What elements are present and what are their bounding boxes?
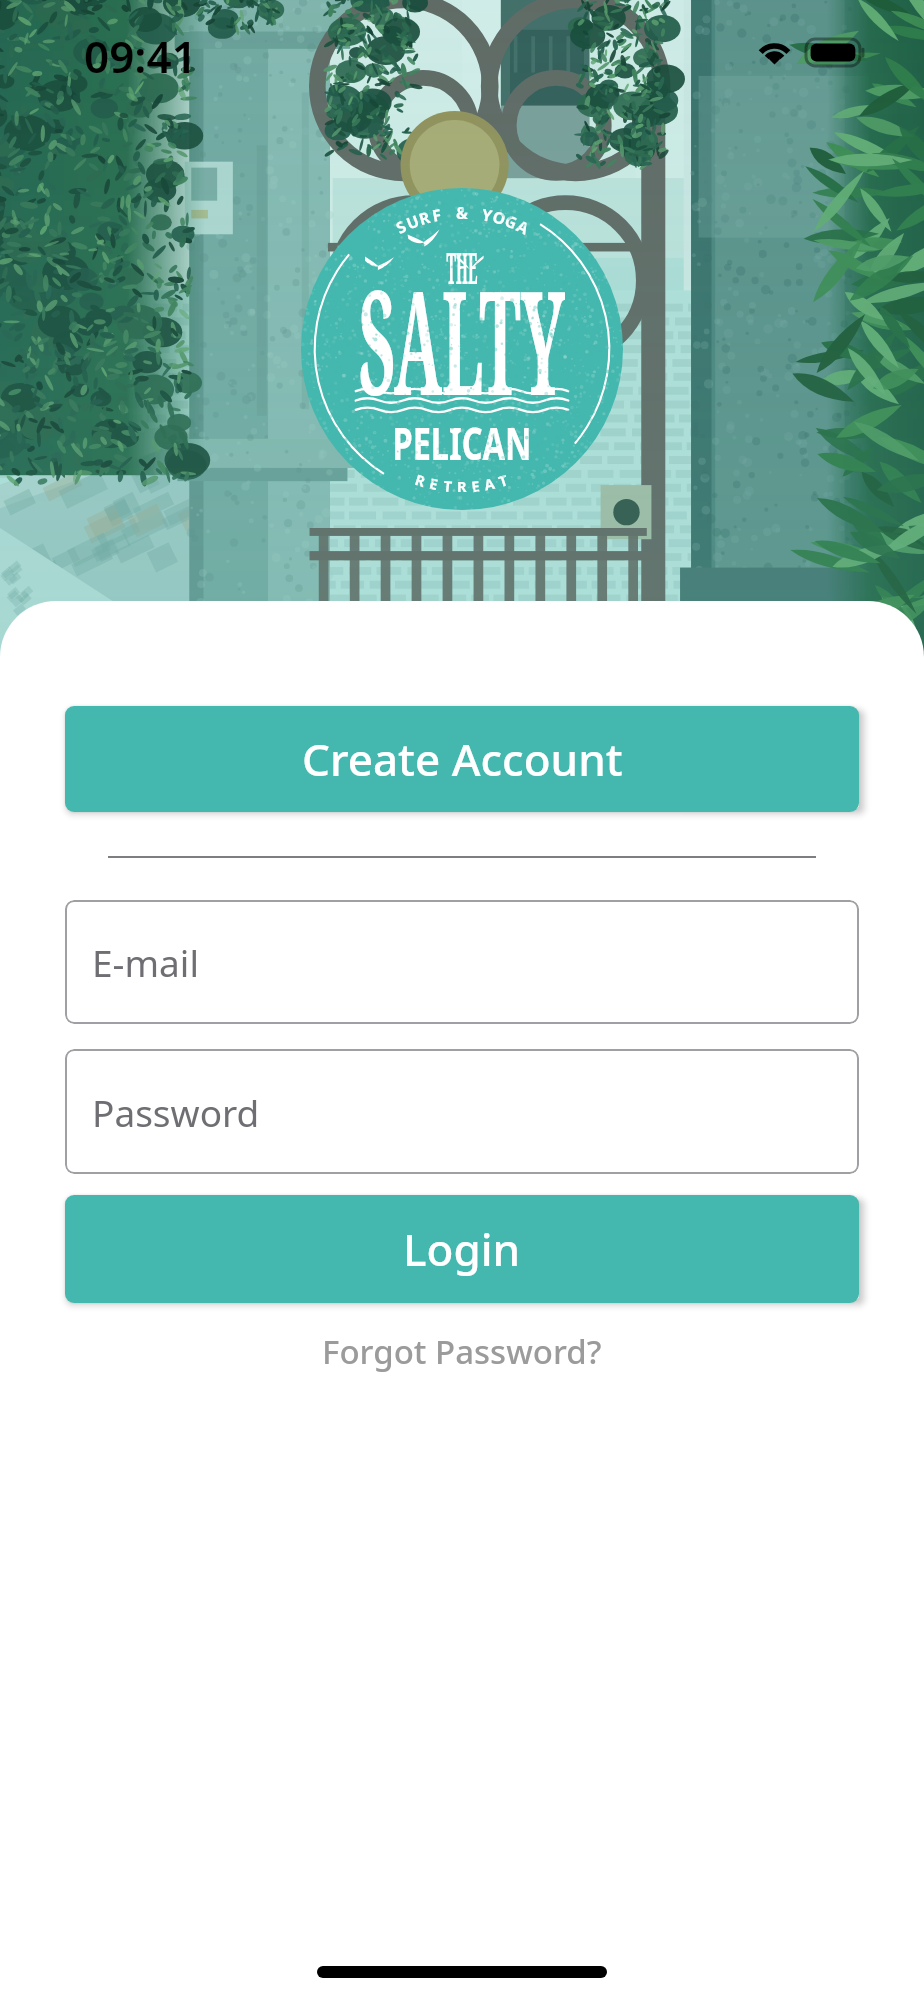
staticText: Login [403, 1219, 521, 1279]
button[interactable]: E-mail [65, 900, 859, 1024]
staticText: Forgot Password? [322, 1329, 602, 1374]
other: Wi-Fi signal [757, 39, 792, 65]
other: Battery [806, 39, 864, 66]
button[interactable]: Create Account [65, 706, 859, 812]
button[interactable]: Login [65, 1195, 859, 1303]
staticText: Password [92, 1087, 260, 1137]
staticText: Create Account [302, 729, 623, 789]
button[interactable]: Forgot Password? [302, 1319, 622, 1384]
staticText: E-mail [92, 937, 199, 987]
staticText: 09:41 [84, 26, 197, 86]
button[interactable]: Password [65, 1049, 859, 1174]
